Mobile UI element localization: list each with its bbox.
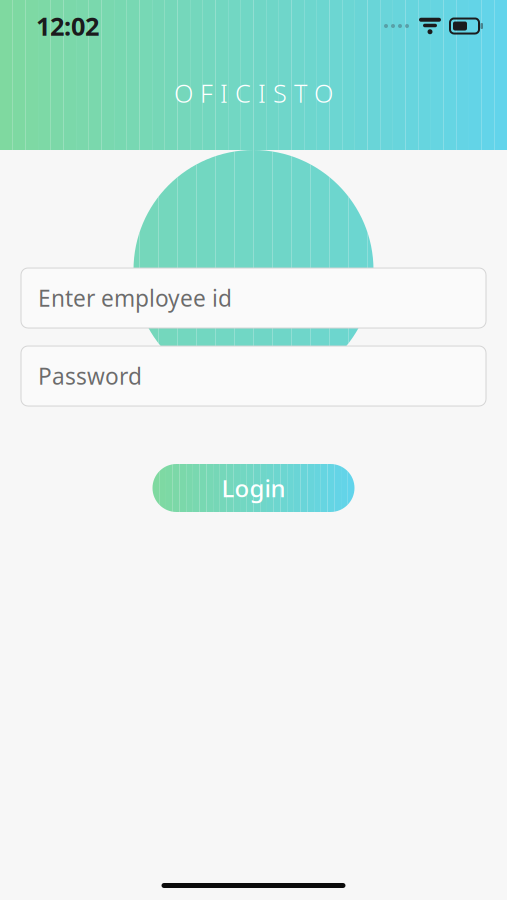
staticText: Password xyxy=(38,361,142,391)
staticText: 12:02 xyxy=(36,9,99,43)
staticText: Login xyxy=(221,472,285,504)
button[interactable]: Login xyxy=(152,464,354,512)
staticText: Enter employee id xyxy=(38,283,232,313)
button[interactable]: Enter employee id xyxy=(21,268,486,328)
button[interactable]: Password xyxy=(21,346,486,406)
staticText: O F I C I S T O xyxy=(174,76,333,110)
